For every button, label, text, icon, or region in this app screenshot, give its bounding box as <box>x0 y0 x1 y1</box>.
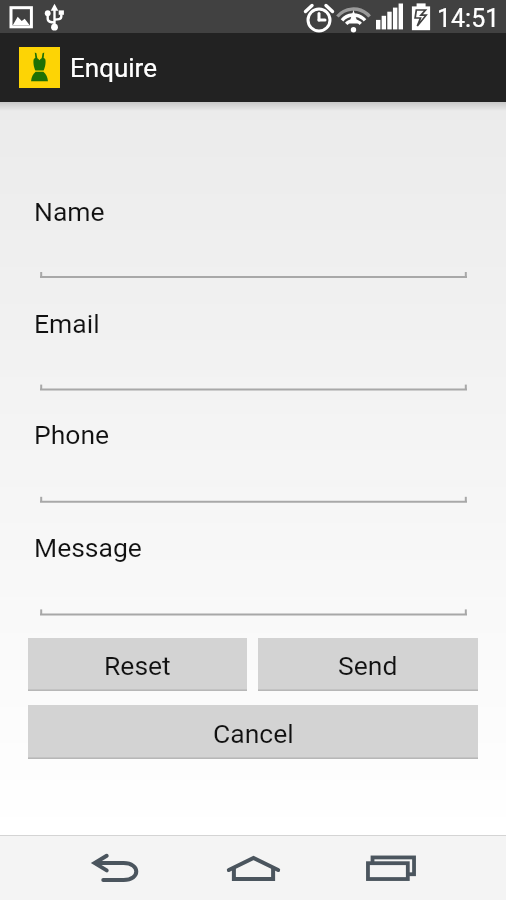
button[interactable]: Enquire app icon <box>19 47 60 88</box>
staticText: Reset <box>104 650 171 681</box>
button[interactable]: Email <box>0 304 506 396</box>
button[interactable]: Name <box>0 192 506 283</box>
staticText: Name <box>34 196 105 227</box>
staticText: Message <box>34 532 142 563</box>
staticText: Enquire <box>70 53 157 83</box>
staticText: Phone <box>34 419 110 450</box>
staticText: Cancel <box>213 718 294 749</box>
staticText: Send <box>338 650 398 681</box>
button[interactable]: Back <box>48 836 185 900</box>
button[interactable]: Recent apps <box>322 836 459 900</box>
button[interactable]: Phone <box>0 415 506 508</box>
staticText: 14:51 <box>437 4 500 33</box>
staticText: Email <box>34 308 100 339</box>
button[interactable]: Send <box>258 638 478 691</box>
button[interactable]: Reset <box>28 638 247 691</box>
button[interactable]: Message <box>0 528 506 620</box>
button[interactable]: Cancel <box>28 705 478 759</box>
button[interactable]: Home <box>185 836 322 900</box>
